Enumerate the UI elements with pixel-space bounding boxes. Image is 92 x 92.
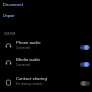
staticText: Phone audio <box>16 40 41 45</box>
button[interactable]: Phone audio <box>80 44 90 51</box>
staticText: Media audio <box>16 57 41 62</box>
staticText: For sharing contacts <box>16 82 43 85</box>
button[interactable]: Disconnect <box>2 1 24 8</box>
button[interactable]: Unpair <box>2 12 16 19</box>
button[interactable]: Media audio <box>0 54 92 70</box>
button[interactable]: Media audio <box>80 61 90 68</box>
staticText: Disconnect <box>3 2 23 7</box>
button[interactable]: Contact sharing <box>80 80 90 87</box>
button[interactable]: Contact sharing <box>0 73 92 89</box>
button[interactable]: Phone audio <box>0 37 92 53</box>
staticText: USE FOR <box>4 32 16 35</box>
staticText: Connected <box>16 46 30 49</box>
staticText: Connected <box>16 63 30 66</box>
staticText: Contact sharing <box>16 76 47 81</box>
staticText: Unpair <box>3 13 15 18</box>
